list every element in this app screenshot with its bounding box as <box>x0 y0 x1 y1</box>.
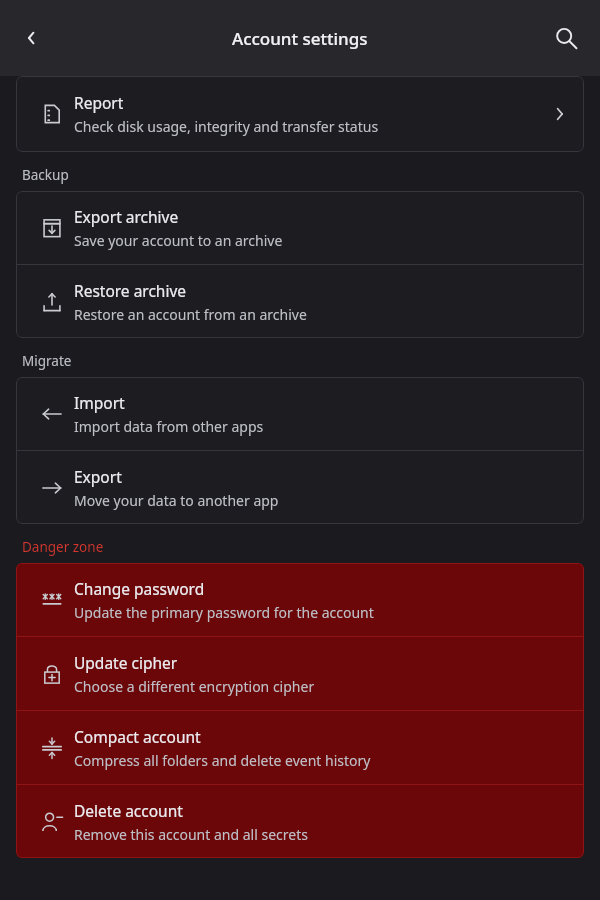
staticText: Compact account <box>74 726 201 747</box>
staticText: Restore an account from an archive <box>74 305 307 324</box>
button[interactable]: Import <box>16 377 584 450</box>
staticText: Update cipher <box>74 652 178 673</box>
button[interactable]: Restore archive <box>16 265 584 338</box>
staticText: Check disk usage, integrity and transfer… <box>74 117 379 136</box>
staticText: Choose a different encryption cipher <box>74 677 315 696</box>
button[interactable]: Update cipher <box>16 637 584 710</box>
button[interactable]: Compact account <box>16 711 584 784</box>
staticText: Change password <box>74 578 205 599</box>
staticText: Export <box>74 466 122 487</box>
button[interactable]: Back <box>10 16 54 60</box>
button[interactable]: Search <box>544 16 588 60</box>
button[interactable]: Report <box>16 76 584 152</box>
staticText: Import <box>74 392 125 413</box>
button[interactable]: Export archive <box>16 191 584 264</box>
staticText: Account settings <box>232 27 368 50</box>
staticText: Migrate <box>22 352 72 370</box>
button[interactable]: Delete account <box>16 785 584 858</box>
staticText: Report <box>74 92 124 113</box>
button[interactable]: Export <box>16 451 584 524</box>
staticText: Danger zone <box>22 538 104 556</box>
staticText: Compress all folders and delete event hi… <box>74 751 371 770</box>
staticText: Remove this account and all secrets <box>74 825 308 844</box>
staticText: Import data from other apps <box>74 417 264 436</box>
staticText: Delete account <box>74 800 183 821</box>
staticText: Backup <box>22 166 69 184</box>
staticText: Restore archive <box>74 280 187 301</box>
staticText: Export archive <box>74 206 179 227</box>
staticText: Update the primary password for the acco… <box>74 603 374 622</box>
button[interactable]: Change password <box>16 563 584 636</box>
staticText: Move your data to another app <box>74 491 279 510</box>
staticText: Save your account to an archive <box>74 231 283 250</box>
